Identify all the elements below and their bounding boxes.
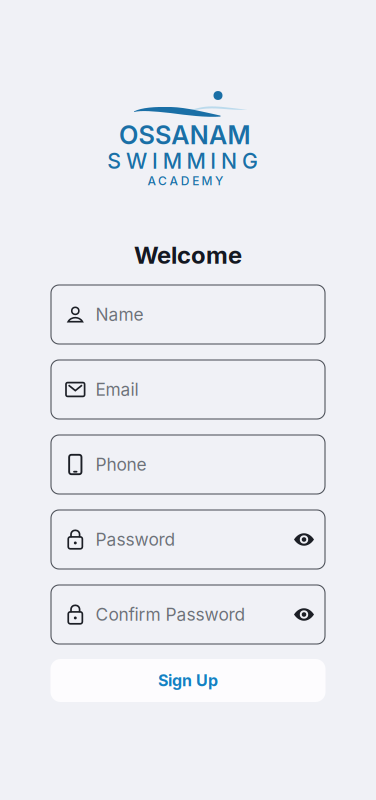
staticText: Phone	[96, 454, 147, 475]
staticText: Email	[96, 379, 139, 400]
staticText: SWIMMING	[107, 148, 269, 174]
button[interactable]: Confirm Password	[51, 585, 325, 644]
button[interactable]: Sign Up	[50, 659, 325, 702]
staticText: Password	[96, 529, 176, 550]
button[interactable]: Phone	[51, 435, 325, 494]
button[interactable]: Name	[51, 285, 325, 344]
button[interactable]: Email	[51, 360, 325, 419]
staticText: Confirm Password	[96, 604, 246, 625]
staticText: ACADEMY	[148, 174, 228, 188]
staticText: Welcome	[134, 240, 242, 269]
staticText: Sign Up	[158, 671, 218, 690]
staticText: Name	[96, 304, 144, 325]
button[interactable]: Password	[51, 510, 325, 569]
staticText: OSSANAM	[119, 120, 257, 150]
